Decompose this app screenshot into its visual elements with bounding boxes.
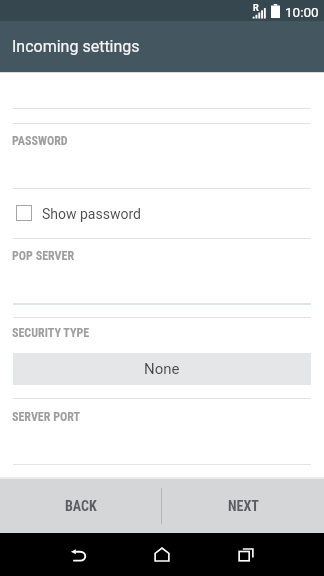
button[interactable]: None	[13, 353, 311, 385]
staticText: None	[144, 360, 180, 378]
staticText: Show password	[42, 206, 141, 222]
button[interactable]: Home	[133, 533, 190, 576]
staticText: BACK	[65, 498, 97, 514]
staticText: Incoming settings	[12, 37, 140, 56]
staticText: POP SERVER	[12, 249, 75, 263]
button[interactable]: NEXT	[162, 479, 324, 533]
staticText: 10:00	[285, 4, 319, 20]
staticText: NEXT	[228, 498, 259, 514]
button[interactable]: Back	[50, 533, 107, 576]
staticText: R	[253, 3, 259, 14]
staticText: PASSWORD	[12, 134, 68, 148]
staticText: SECURITY TYPE	[12, 326, 90, 340]
button[interactable]: BACK	[0, 479, 161, 533]
staticText: SERVER PORT	[12, 410, 81, 424]
button[interactable]: Recent apps	[217, 533, 274, 576]
button[interactable]: Show password	[16, 204, 141, 222]
